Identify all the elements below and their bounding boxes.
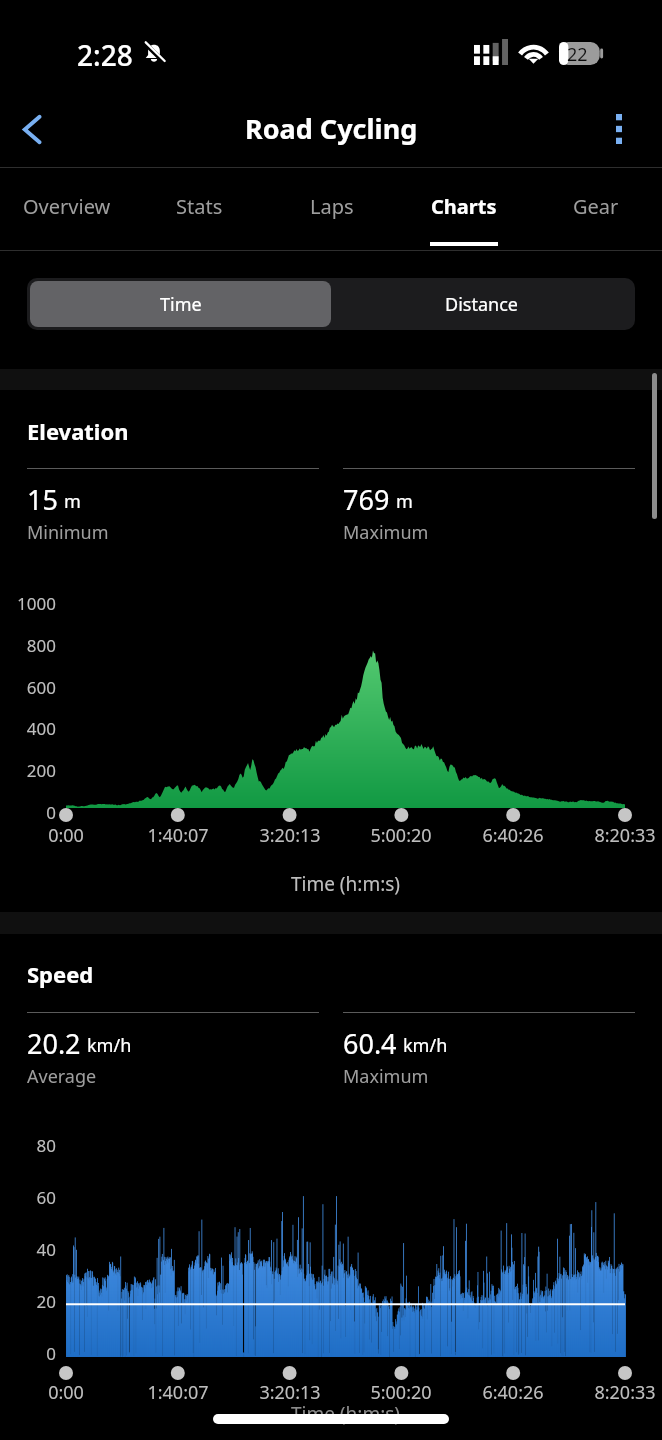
staticText: Average [27, 1064, 97, 1089]
staticText: 6:40:26 [453, 1380, 573, 1405]
staticText: 1:40:07 [118, 1380, 238, 1405]
staticText: m [396, 489, 413, 514]
staticText: 400 [3, 717, 56, 740]
staticText: Time (h:m:s) [61, 1401, 630, 1427]
staticText: 200 [3, 759, 56, 782]
button[interactable]: Charts [398, 167, 530, 251]
staticText: km/h [87, 1033, 132, 1058]
staticText: 8:20:33 [565, 823, 662, 848]
staticText: Time (h:m:s) [61, 871, 630, 897]
staticText: km/h [403, 1033, 448, 1058]
button[interactable]: More options [597, 107, 641, 151]
staticText: Speed [27, 959, 94, 989]
staticText: 5:00:20 [341, 823, 461, 848]
staticText: Distance [445, 292, 518, 317]
staticText: 20 [3, 1290, 56, 1313]
staticText: 8:20:33 [565, 1380, 662, 1405]
staticText: 3:20:13 [230, 1380, 350, 1405]
button[interactable]: Gear [530, 167, 662, 251]
staticText: Overview [23, 193, 111, 220]
staticText: 5:00:20 [341, 1380, 461, 1405]
staticText: Stats [176, 193, 223, 220]
staticText: Laps [310, 193, 354, 220]
button[interactable]: Stats [133, 167, 266, 251]
staticText: 769 [343, 481, 390, 518]
staticText: Elevation [27, 416, 129, 446]
staticText: 20.2 [27, 1025, 81, 1062]
staticText: 60 [3, 1186, 56, 1209]
staticText: 3:20:13 [230, 823, 350, 848]
staticText: Maximum [343, 520, 429, 545]
staticText: 1:40:07 [118, 823, 238, 848]
staticText: 800 [3, 634, 56, 657]
staticText: 0:00 [6, 1380, 126, 1405]
staticText: 80 [3, 1134, 56, 1157]
staticText: Time [160, 292, 202, 317]
staticText: 600 [3, 676, 56, 699]
staticText: Charts [431, 193, 497, 220]
staticText: 60.4 [343, 1025, 397, 1062]
button[interactable]: Time [30, 281, 331, 327]
staticText: 0 [3, 801, 56, 824]
staticText: Road Cycling [245, 110, 418, 147]
staticText: Gear [573, 193, 619, 220]
staticText: 0 [3, 1342, 56, 1365]
staticText: 6:40:26 [453, 823, 573, 848]
button[interactable]: Laps [266, 167, 398, 251]
staticText: 15 [27, 481, 58, 518]
staticText: 22 [567, 42, 588, 65]
staticText: Maximum [343, 1064, 429, 1089]
staticText: Minimum [27, 520, 109, 545]
button[interactable]: Back [6, 103, 58, 155]
staticText: 40 [3, 1238, 56, 1261]
button[interactable]: Overview [0, 167, 133, 251]
staticText: 2:28 [77, 36, 133, 74]
staticText: m [64, 489, 81, 514]
staticText: 1000 [3, 592, 56, 615]
button[interactable]: Distance [331, 281, 632, 327]
staticText: 0:00 [6, 823, 126, 848]
